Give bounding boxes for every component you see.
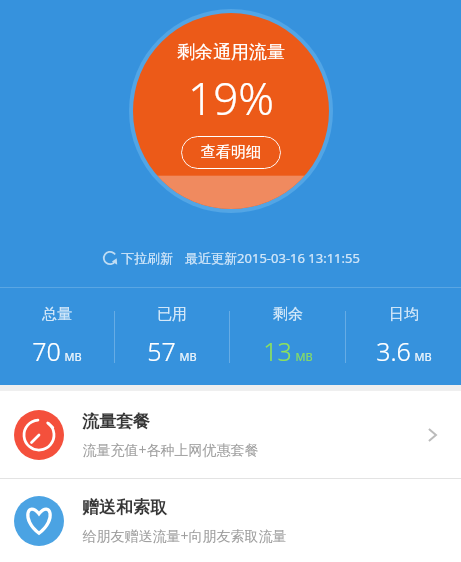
other: Open [421,424,443,446]
other: 流量套餐 [14,410,64,460]
staticText: 剩余通用流量 [177,41,285,64]
staticText: 剩余 [273,305,303,324]
staticText: MB [414,349,432,364]
other: 赠送和索取 [14,496,64,546]
staticText: 流量充值+各种上网优惠套餐 [82,440,259,459]
button[interactable]: 查看明细 [181,136,281,169]
staticText: 日均 [389,305,419,324]
button[interactable]: 总量 [0,305,114,368]
button[interactable]: 已用 [115,305,229,368]
button[interactable]: 日均 [346,305,461,368]
button[interactable]: 剩余 [230,305,345,368]
button[interactable]: 流量套餐 [0,391,461,478]
button[interactable]: Refresh [102,249,360,267]
staticText: 总量 [42,305,72,324]
button[interactable]: 赠送和索取 [0,479,461,562]
staticText: 赠送和索取 [82,497,167,518]
staticText: MB [64,349,82,364]
staticText: 流量套餐 [82,411,150,432]
staticText: 19% [188,68,274,128]
staticText: 70 [32,334,61,368]
staticText: 最近更新2015-03-16 13:11:55 [185,249,360,267]
staticText: 13 [263,334,292,368]
staticText: 已用 [157,305,187,324]
staticText: MB [179,349,197,364]
staticText: MB [295,349,313,364]
staticText: 下拉刷新 [121,250,173,266]
other: Refresh [102,250,118,266]
staticText: 3.6 [376,334,411,368]
staticText: 查看明细 [201,143,261,162]
staticText: 给朋友赠送流量+向朋友索取流量 [82,526,287,545]
staticText: 57 [147,334,176,368]
